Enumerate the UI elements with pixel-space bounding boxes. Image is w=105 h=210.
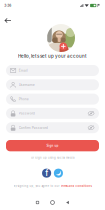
staticText: Confirm Password	[19, 126, 48, 130]
button[interactable]: terms and conditions	[60, 184, 91, 188]
button[interactable]: Sign up with Twitter	[54, 169, 63, 178]
button[interactable]: Sign up with Facebook	[42, 169, 51, 178]
button[interactable]: Username	[6, 79, 99, 90]
staticText: Password	[19, 111, 35, 115]
button[interactable]: Email	[6, 65, 99, 76]
button[interactable]: Back	[1, 15, 15, 26]
staticText: Username	[19, 83, 35, 87]
button[interactable]: Add profile photo	[59, 42, 67, 50]
staticText: Hello, lets set up your account	[18, 53, 87, 59]
staticText: Sign up	[46, 144, 58, 147]
button[interactable]: Recent apps	[30, 198, 45, 207]
button[interactable]: Password	[6, 108, 99, 119]
button[interactable]: Back	[60, 198, 75, 207]
staticText: terms and conditions	[60, 184, 91, 188]
staticText: f	[45, 168, 48, 178]
staticText: By signing up, you agree to our	[13, 184, 60, 188]
button[interactable]: Confirm Password	[6, 122, 99, 133]
staticText: Email	[19, 68, 28, 72]
button[interactable]: Sign up	[6, 140, 99, 151]
staticText: Phone	[19, 97, 29, 101]
button[interactable]: Home	[45, 198, 60, 207]
staticText: Or Sign up using social media	[31, 156, 74, 159]
button[interactable]: Phone	[6, 94, 99, 105]
staticText: 3:36	[4, 4, 11, 7]
